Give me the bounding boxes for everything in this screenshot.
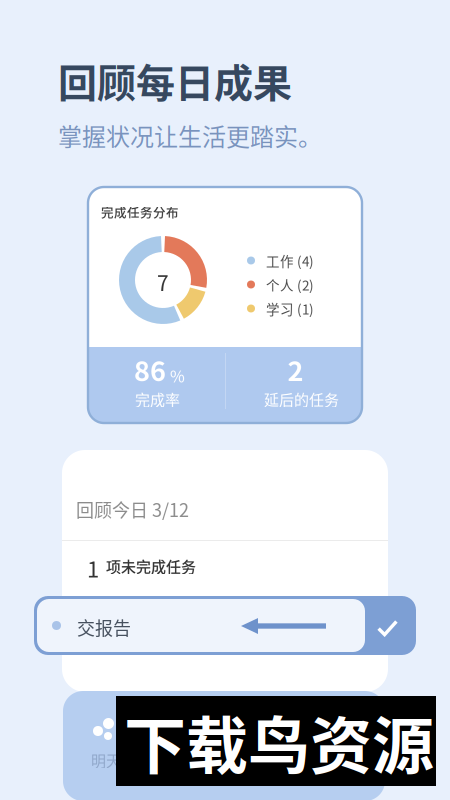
staticText: 延后的任务 xyxy=(264,388,339,410)
staticText: 项未完成任务 xyxy=(106,555,196,577)
staticText: 学习 (1) xyxy=(266,299,314,318)
staticText: % xyxy=(170,364,185,387)
button[interactable]: 完成任务分布 xyxy=(88,187,362,423)
staticText: 7 xyxy=(157,267,169,297)
staticText: 2 xyxy=(287,350,303,389)
staticText: 回顾今日 3/12 xyxy=(76,496,189,522)
staticText: 工作 (4) xyxy=(266,251,314,270)
staticText: 掌握状况让生活更踏实。 xyxy=(58,118,322,153)
button[interactable]: 交报告 xyxy=(34,596,416,655)
staticText: 完成率 xyxy=(135,388,180,410)
staticText: 回顾每日成果 xyxy=(58,52,292,108)
staticText: 1 xyxy=(87,552,99,584)
staticText: 86 xyxy=(134,350,166,389)
staticText: 完成任务分布 xyxy=(101,203,179,221)
staticText: 明天 xyxy=(91,749,121,771)
staticText: 下载鸟资源 xyxy=(124,697,434,787)
staticText: 个人 (2) xyxy=(266,275,314,294)
staticText: 交报告 xyxy=(77,614,131,640)
